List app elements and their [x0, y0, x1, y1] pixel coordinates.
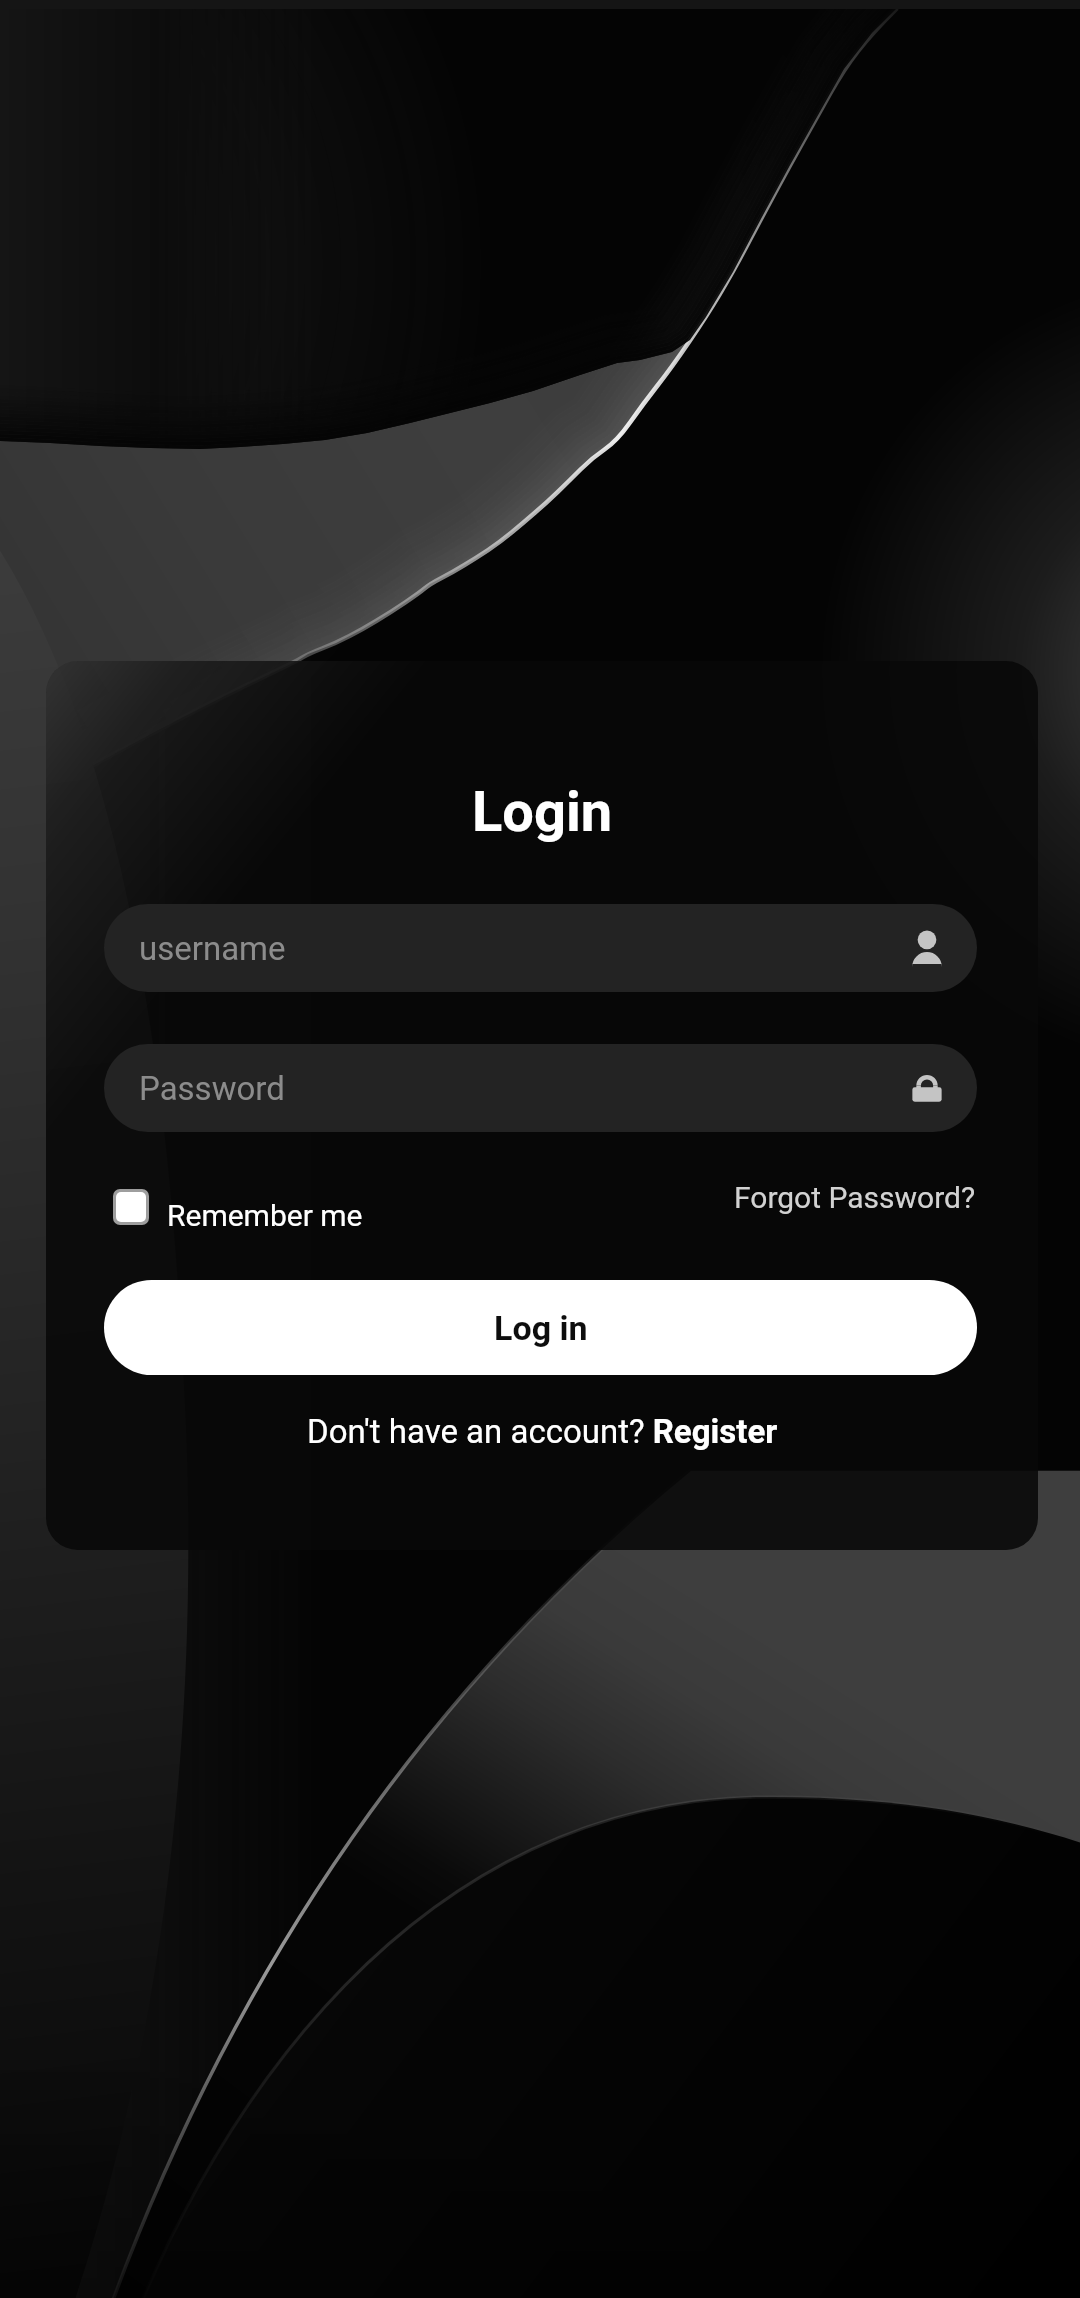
button[interactable]: Forgot Password? [720, 1166, 990, 1228]
button[interactable]: Password field [104, 1044, 977, 1132]
staticText: username [139, 929, 286, 968]
staticText: Log in [494, 1308, 588, 1348]
button[interactable]: Don't have an account? Register [46, 1402, 1038, 1460]
button[interactable]: Remember me [113, 1180, 371, 1242]
staticText: Don't have an account? Register [307, 1412, 778, 1451]
staticText: Login [46, 779, 1038, 845]
button[interactable]: Username field [104, 904, 977, 992]
staticText: Password [139, 1069, 285, 1108]
staticText: Remember me [167, 1198, 363, 1233]
staticText: Forgot Password? [734, 1180, 976, 1215]
button[interactable]: Log in [104, 1280, 977, 1375]
